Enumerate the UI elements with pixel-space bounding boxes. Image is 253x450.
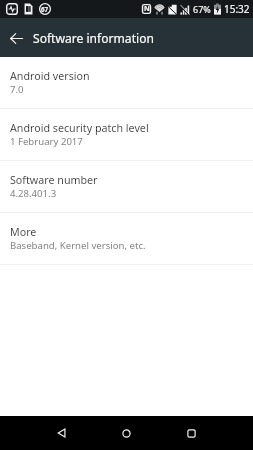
button[interactable]: More [0, 213, 253, 264]
staticText: 15:32 [224, 2, 250, 16]
button[interactable]: Back [29, 416, 94, 450]
staticText: 4.28.401.3 [10, 187, 57, 200]
button[interactable]: Software number [0, 161, 253, 212]
staticText: 67 [41, 5, 49, 13]
button[interactable]: Android security patch level [0, 109, 253, 160]
button[interactable]: Home [94, 416, 159, 450]
staticText: More [10, 225, 37, 240]
staticText: 7.0 [10, 83, 24, 96]
staticText: 1 February 2017 [10, 135, 83, 148]
staticText: Software number [10, 173, 98, 188]
staticText: Android version [10, 69, 90, 84]
button[interactable]: Android version [0, 57, 253, 108]
button[interactable]: Back [2, 24, 30, 52]
button[interactable]: Recents [159, 416, 224, 450]
staticText: Baseband, Kernel version, etc. [10, 239, 146, 252]
staticText: 67% [193, 3, 211, 15]
staticText: Software information [33, 30, 154, 46]
staticText: Android security patch level [10, 121, 149, 136]
staticText: N [144, 4, 150, 14]
